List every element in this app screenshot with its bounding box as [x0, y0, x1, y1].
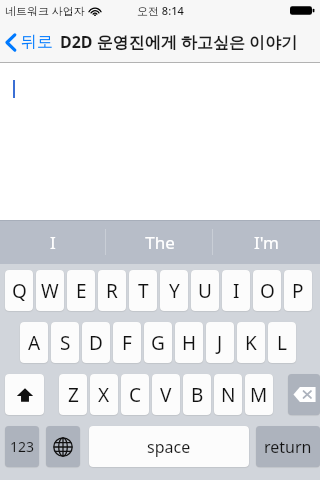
button[interactable] [0, 63, 320, 220]
staticText: return [264, 436, 312, 458]
staticText: D2D 운영진에게 하고싶은 이야기 [60, 31, 298, 53]
button[interactable]: H [175, 322, 203, 363]
staticText: T [138, 278, 149, 304]
button[interactable]: P [284, 270, 312, 311]
staticText: W [41, 278, 59, 304]
staticText: C [129, 382, 142, 408]
staticText: F [122, 330, 132, 356]
staticText: 123 [10, 437, 35, 456]
button[interactable]: I'm [213, 220, 320, 264]
staticText: U [198, 278, 212, 304]
button[interactable]: E [67, 270, 95, 311]
staticText: B [191, 382, 204, 408]
button[interactable]: D [82, 322, 110, 363]
staticText: L [277, 330, 287, 356]
button[interactable]: Y [160, 270, 188, 311]
button[interactable]: M [245, 374, 273, 415]
staticText: M [250, 382, 268, 408]
staticText: 뒤로 [21, 32, 53, 52]
button[interactable]: space [89, 426, 249, 467]
button[interactable]: Z [59, 374, 87, 415]
button[interactable]: Backspace [288, 374, 320, 415]
button[interactable]: V [152, 374, 180, 415]
staticText: P [292, 278, 304, 304]
staticText: S [60, 330, 71, 356]
staticText: 네트워크 사업자 [5, 3, 85, 18]
button[interactable]: N [214, 374, 242, 415]
button[interactable]: Q [5, 270, 33, 311]
button[interactable]: return [256, 426, 320, 467]
button[interactable]: B [183, 374, 211, 415]
staticText: K [245, 330, 257, 356]
staticText: G [151, 330, 165, 356]
button[interactable]: L [268, 322, 296, 363]
button[interactable]: F [113, 322, 141, 363]
staticText: A [28, 330, 41, 356]
staticText: J [217, 330, 223, 356]
button[interactable]: I [0, 220, 106, 264]
staticText: E [76, 278, 87, 304]
button[interactable]: Change keyboard [46, 426, 80, 467]
staticText: X [98, 382, 110, 408]
button[interactable]: T [129, 270, 157, 311]
button[interactable]: X [90, 374, 118, 415]
button[interactable]: K [237, 322, 265, 363]
button[interactable]: J [206, 322, 234, 363]
button[interactable]: W [36, 270, 64, 311]
button[interactable]: Shift [5, 374, 44, 415]
staticText: I [50, 231, 56, 254]
staticText: V [160, 382, 172, 408]
staticText: 오전 8:14 [137, 3, 184, 18]
button[interactable]: The [106, 220, 213, 264]
staticText: R [106, 278, 118, 304]
button[interactable]: G [144, 322, 172, 363]
staticText: H [182, 330, 197, 356]
button[interactable]: R [98, 270, 126, 311]
staticText: Q [12, 278, 27, 304]
staticText: N [221, 382, 236, 408]
staticText: D [89, 330, 103, 356]
staticText: Z [68, 382, 79, 408]
button[interactable]: C [121, 374, 149, 415]
button[interactable]: U [191, 270, 219, 311]
staticText: I'm [254, 231, 279, 254]
button[interactable]: S [51, 322, 79, 363]
staticText: space [147, 436, 191, 458]
staticText: I [233, 278, 240, 304]
staticText: Y [169, 278, 180, 304]
staticText: O [260, 278, 275, 304]
button[interactable]: 뒤로 [5, 32, 53, 52]
button[interactable]: O [253, 270, 281, 311]
staticText: The [145, 231, 175, 254]
button[interactable]: 123 [5, 426, 39, 467]
button[interactable]: I [222, 270, 250, 311]
button[interactable]: A [20, 322, 48, 363]
